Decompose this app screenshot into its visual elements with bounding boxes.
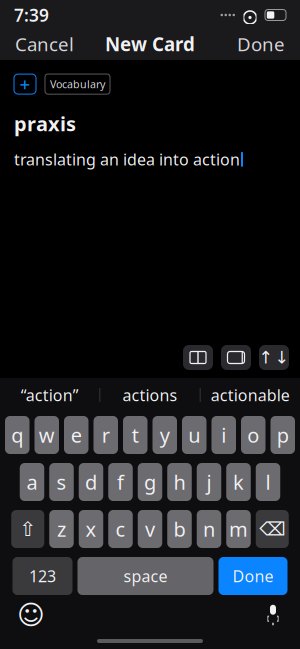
button[interactable]: n: [197, 510, 221, 548]
staticText: g: [144, 469, 156, 495]
button[interactable]: Dictation: [262, 604, 284, 626]
button[interactable]: a: [20, 463, 44, 501]
button[interactable]: space: [77, 557, 213, 595]
staticText: n: [203, 516, 215, 542]
staticText: translating an idea into action: [14, 149, 240, 170]
button[interactable]: u: [182, 416, 206, 454]
button[interactable]: Dictionary: [183, 345, 213, 370]
staticText: space: [123, 565, 167, 587]
staticText: z: [57, 516, 66, 542]
staticText: j: [206, 469, 211, 495]
staticText: ↓: [274, 348, 289, 367]
button[interactable]: f: [108, 463, 133, 501]
staticText: f: [117, 469, 124, 495]
button[interactable]: 123: [12, 557, 72, 595]
staticText: u: [188, 422, 200, 448]
staticText: Done: [232, 565, 273, 587]
button[interactable]: c: [108, 510, 133, 548]
button[interactable]: i: [211, 416, 236, 454]
button[interactable]: Done: [225, 26, 297, 62]
staticText: New Card: [105, 32, 195, 56]
staticText: actions: [122, 384, 177, 406]
staticText: d: [85, 469, 97, 495]
staticText: r: [102, 422, 110, 448]
button[interactable]: Done: [218, 557, 287, 595]
staticText: ↑: [258, 348, 273, 367]
button[interactable]: v: [138, 510, 162, 548]
button[interactable]: x: [79, 510, 103, 548]
button[interactable]: j: [197, 463, 221, 501]
staticText: p: [277, 422, 289, 448]
staticText: +: [19, 72, 30, 96]
staticText: t: [132, 422, 139, 448]
staticText: a: [26, 469, 37, 495]
button[interactable]: q: [5, 416, 29, 454]
button[interactable]: l: [256, 463, 280, 501]
button[interactable]: w: [34, 416, 59, 454]
button[interactable]: p: [270, 416, 295, 454]
staticText: ⇧: [19, 518, 36, 540]
staticText: ☺: [17, 600, 45, 630]
button[interactable]: b: [167, 510, 192, 548]
staticText: ⌫: [259, 518, 285, 540]
button[interactable]: Card layout: [221, 345, 251, 370]
staticText: i: [221, 422, 226, 448]
button[interactable]: Emoji keyboard: [16, 602, 46, 628]
staticText: q: [11, 422, 23, 448]
button[interactable]: actions: [100, 378, 200, 412]
staticText: Done: [237, 32, 285, 56]
button[interactable]: y: [152, 416, 177, 454]
staticText: “action”: [21, 384, 79, 406]
button[interactable]: t: [123, 416, 147, 454]
staticText: e: [71, 422, 82, 448]
staticText: h: [173, 469, 185, 495]
button[interactable]: s: [49, 463, 74, 501]
staticText: Cancel: [15, 32, 74, 56]
staticText: y: [160, 422, 170, 448]
staticText: s: [56, 469, 66, 495]
button[interactable]: m: [226, 510, 251, 548]
button[interactable]: Delete: [256, 510, 289, 548]
button[interactable]: Swap sides: [259, 345, 289, 370]
staticText: x: [85, 516, 96, 542]
button[interactable]: h: [167, 463, 192, 501]
button[interactable]: z: [49, 510, 74, 548]
button[interactable]: r: [93, 416, 118, 454]
staticText: o: [247, 422, 259, 448]
staticText: 123: [29, 565, 56, 587]
staticText: 7:39: [14, 3, 49, 26]
button[interactable]: k: [226, 463, 251, 501]
staticText: actionable: [211, 384, 290, 406]
staticText: v: [145, 516, 155, 542]
button[interactable]: “action”: [0, 378, 99, 412]
button[interactable]: Vocabulary: [45, 74, 110, 94]
staticText: praxis: [14, 110, 76, 137]
staticText: c: [115, 516, 125, 542]
button[interactable]: Add tag: [14, 74, 36, 94]
button[interactable]: e: [64, 416, 88, 454]
staticText: m: [229, 516, 248, 542]
button[interactable]: Shift: [11, 510, 44, 548]
staticText: l: [265, 469, 270, 495]
button[interactable]: o: [241, 416, 265, 454]
staticText: w: [39, 422, 55, 448]
button[interactable]: actionable: [201, 378, 300, 412]
staticText: Vocabulary: [50, 77, 105, 91]
button[interactable]: g: [138, 463, 162, 501]
button[interactable]: Cancel: [3, 26, 86, 62]
button[interactable]: d: [79, 463, 103, 501]
staticText: k: [233, 469, 244, 495]
staticText: b: [173, 516, 185, 542]
